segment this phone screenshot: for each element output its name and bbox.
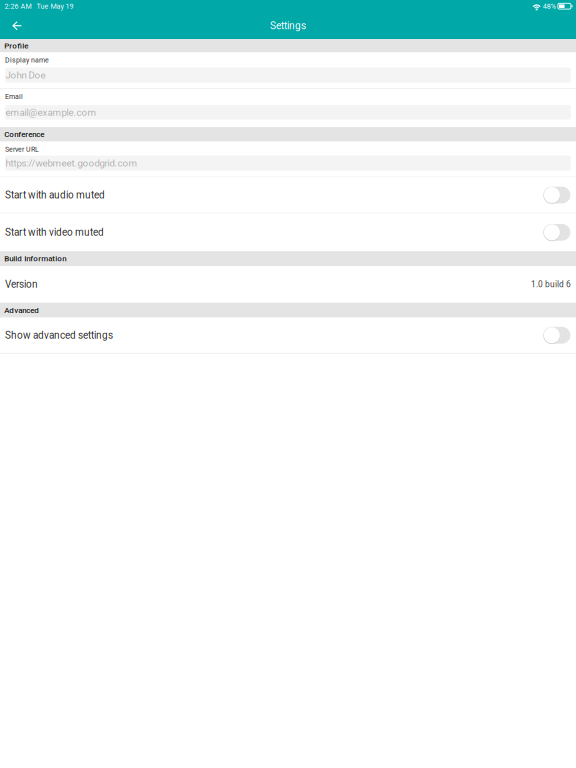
staticText: https://webmeet.goodgrid.com [5, 157, 137, 169]
staticText: Start with audio muted [5, 189, 105, 201]
staticText: Tue May 19 [37, 2, 74, 10]
button[interactable]: Start with video muted [0, 214, 576, 251]
staticText: Profile [4, 41, 28, 50]
staticText: 48% [543, 2, 556, 10]
button[interactable]: Display name [0, 52, 576, 88]
staticText: Version [5, 278, 38, 290]
button[interactable]: Start with audio muted [0, 177, 576, 213]
staticText: Start with video muted [5, 226, 104, 238]
staticText: Server URL [5, 145, 39, 153]
staticText: John Doe [5, 69, 45, 81]
button[interactable]: Show advanced settings [0, 318, 576, 353]
staticText: email@example.com [5, 107, 96, 118]
button[interactable]: Server URL [0, 142, 576, 176]
staticText: 1.0 build 6 [531, 279, 571, 289]
staticText: Settings [270, 20, 306, 32]
staticText: Conference [4, 130, 44, 139]
staticText: Advanced [4, 305, 39, 315]
staticText: Display name [5, 56, 49, 64]
button[interactable]: Version [0, 266, 576, 303]
staticText: Show advanced settings [5, 329, 113, 341]
staticText: Build Information [4, 254, 66, 263]
staticText: 2:26 AM [5, 2, 32, 10]
button[interactable]: Email [0, 89, 576, 127]
button[interactable]: Back [0, 12, 31, 39]
staticText: Email [5, 93, 23, 101]
